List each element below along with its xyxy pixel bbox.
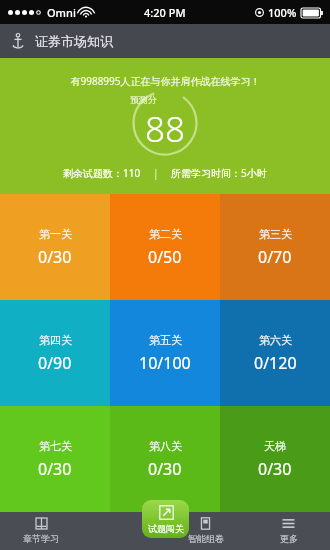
staticText: | <box>153 166 159 180</box>
staticText: 88 <box>145 105 185 153</box>
other: Anchor <box>10 33 26 49</box>
staticText: 第七关 <box>39 439 72 453</box>
button[interactable]: 第二关 <box>110 194 220 300</box>
staticText: 10/100 <box>139 352 191 374</box>
button[interactable]: 章节学习 <box>0 512 82 550</box>
staticText: 0/30 <box>148 458 182 480</box>
staticText: 章节学习 <box>23 533 59 544</box>
staticText: 第八关 <box>149 439 182 453</box>
button[interactable]: 第六关 <box>220 300 330 406</box>
staticText: 第三关 <box>259 227 292 241</box>
other: 章节学习 <box>35 517 48 530</box>
staticText: 100% <box>268 5 297 20</box>
staticText: 试题闯关 <box>148 523 184 534</box>
button[interactable]: 第八关 <box>110 406 220 512</box>
staticText: 0/30 <box>38 458 72 480</box>
staticText: 第五关 <box>149 333 182 347</box>
staticText: 0/30 <box>258 458 292 480</box>
staticText: 第二关 <box>149 227 182 241</box>
staticText: Omni <box>47 5 76 20</box>
button[interactable]: 第五关 <box>110 300 220 406</box>
button[interactable]: 更多 <box>247 512 330 550</box>
staticText: 所需学习时间：5小时 <box>171 166 267 180</box>
staticText: 智能组卷 <box>188 533 224 544</box>
staticText: 0/90 <box>38 352 72 374</box>
staticText: 第一关 <box>39 227 72 241</box>
staticText: 0/120 <box>254 352 297 374</box>
staticText: 天梯 <box>264 439 286 453</box>
staticText: 4:20 PM <box>144 5 186 20</box>
staticText: 更多 <box>280 533 298 544</box>
button[interactable]: 第三关 <box>220 194 330 300</box>
staticText: 剩余试题数：110 <box>63 166 141 180</box>
staticText: 证券市场知识 <box>35 33 113 49</box>
staticText: 0/70 <box>258 246 292 268</box>
button[interactable]: 第七关 <box>0 406 110 512</box>
button[interactable]: 试题闯关 <box>142 500 189 538</box>
other: 更多 <box>282 517 295 530</box>
staticText: 有9988995人正在与你并肩作战在线学习！ <box>70 74 261 88</box>
button[interactable]: 智能组卷 <box>164 512 247 550</box>
staticText: 0/50 <box>148 246 182 268</box>
staticText: 预测分 <box>130 94 157 105</box>
staticText: 第六关 <box>259 333 292 347</box>
other: 智能组卷 <box>199 517 212 530</box>
button[interactable]: 天梯 <box>220 406 330 512</box>
button[interactable]: 第四关 <box>0 300 110 406</box>
staticText: 0/30 <box>38 246 72 268</box>
staticText: 第四关 <box>39 333 72 347</box>
button[interactable]: 第一关 <box>0 194 110 300</box>
